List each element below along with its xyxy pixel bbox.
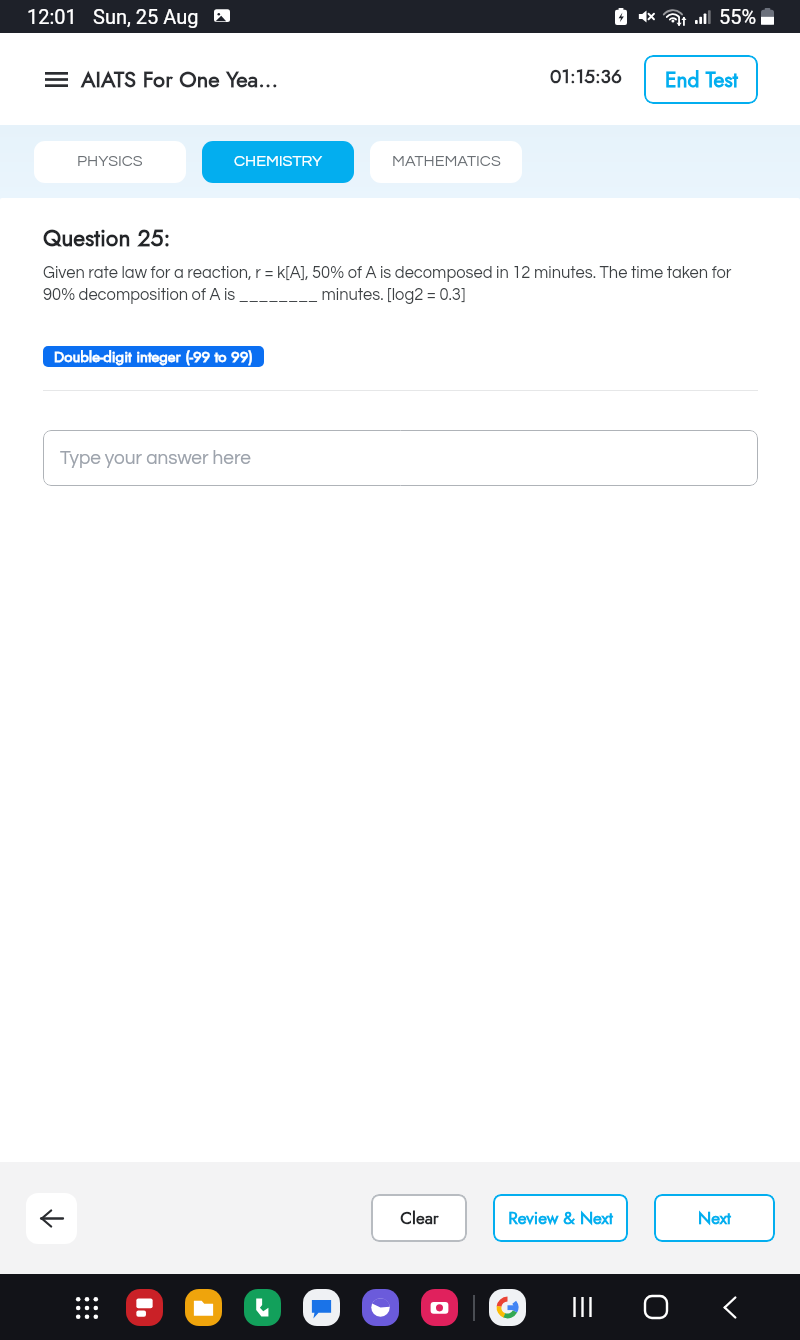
button[interactable]: Home <box>634 1285 678 1329</box>
staticText: Question 25: <box>43 221 171 254</box>
staticText: Double-digit integer (-99 to 99) <box>54 346 253 367</box>
button[interactable]: CHEMISTRY <box>202 141 354 183</box>
button[interactable]: Recents <box>560 1285 604 1329</box>
staticText: Type your answer here <box>60 448 251 468</box>
staticText: Given rate law for a reaction, r = k[A],… <box>43 264 758 304</box>
button[interactable]: Type your answer here <box>43 430 758 486</box>
staticText: 55% <box>719 5 757 28</box>
staticText: CHEMISTRY <box>234 153 323 169</box>
staticText: End Test <box>665 65 738 95</box>
button[interactable]: Files <box>185 1289 222 1326</box>
staticText: Next <box>698 1206 731 1231</box>
button[interactable]: Google <box>489 1289 526 1326</box>
staticText: 12:01 <box>27 5 77 28</box>
staticText: Review & Next <box>508 1206 613 1231</box>
button[interactable]: Back <box>708 1285 752 1329</box>
button[interactable]: Menu <box>33 56 79 102</box>
button[interactable]: PHYSICS <box>34 141 186 183</box>
button[interactable]: Messages <box>303 1289 340 1326</box>
button[interactable]: Next <box>654 1194 775 1242</box>
button[interactable]: End Test <box>644 55 758 104</box>
button[interactable]: Back <box>26 1193 77 1244</box>
staticText: Clear <box>400 1206 439 1231</box>
button[interactable]: Apps <box>70 1291 104 1325</box>
staticText: PHYSICS <box>77 153 143 169</box>
button[interactable]: Phone <box>244 1289 281 1326</box>
button[interactable]: Review & Next <box>493 1194 628 1242</box>
staticText: Sun, 25 Aug <box>93 5 199 28</box>
button[interactable]: MATHEMATICS <box>370 141 522 183</box>
staticText: AIATS For One Yea... <box>81 63 278 95</box>
button[interactable]: Notes <box>126 1289 163 1326</box>
button[interactable]: Browser <box>362 1289 399 1326</box>
button[interactable]: Camera <box>421 1289 458 1326</box>
staticText: MATHEMATICS <box>392 153 501 169</box>
staticText: 01:15:36 <box>550 63 622 90</box>
button[interactable]: Clear <box>371 1194 467 1242</box>
